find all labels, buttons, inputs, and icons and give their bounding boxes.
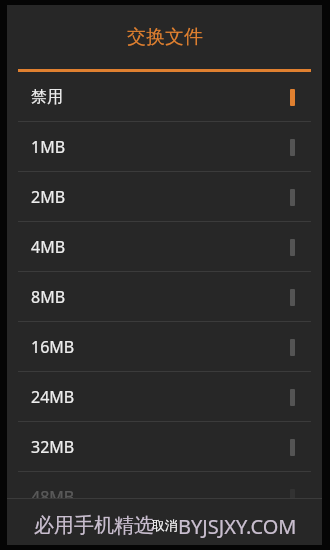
button[interactable]: 32MB [7, 422, 322, 472]
button[interactable]: 48MB [7, 472, 322, 498]
staticText: 禁用 [31, 87, 63, 107]
button[interactable]: 8MB [7, 272, 322, 322]
staticText: 2MB [31, 186, 66, 208]
staticText: 24MB [31, 386, 75, 408]
staticText: 1MB [31, 136, 66, 158]
button[interactable]: 取消 [7, 505, 322, 545]
staticText: 4MB [31, 236, 66, 258]
staticText: 32MB [31, 436, 75, 458]
staticText: 8MB [31, 286, 66, 308]
button[interactable]: 16MB [7, 322, 322, 372]
staticText: 取消 [152, 517, 178, 533]
staticText: BYJSJXY.COM [178, 513, 297, 540]
button[interactable]: 禁用 [7, 72, 322, 122]
button[interactable]: 24MB [7, 372, 322, 422]
other: Watermark [0, 0, 330, 550]
button[interactable]: 2MB [7, 172, 322, 222]
staticText: 16MB [31, 336, 75, 358]
staticText: 必用手机精选 [34, 513, 154, 538]
button[interactable]: 4MB [7, 222, 322, 272]
staticText: 48MB [31, 486, 75, 498]
button[interactable]: 1MB [7, 122, 322, 172]
staticText: 交换文件 [127, 25, 203, 49]
